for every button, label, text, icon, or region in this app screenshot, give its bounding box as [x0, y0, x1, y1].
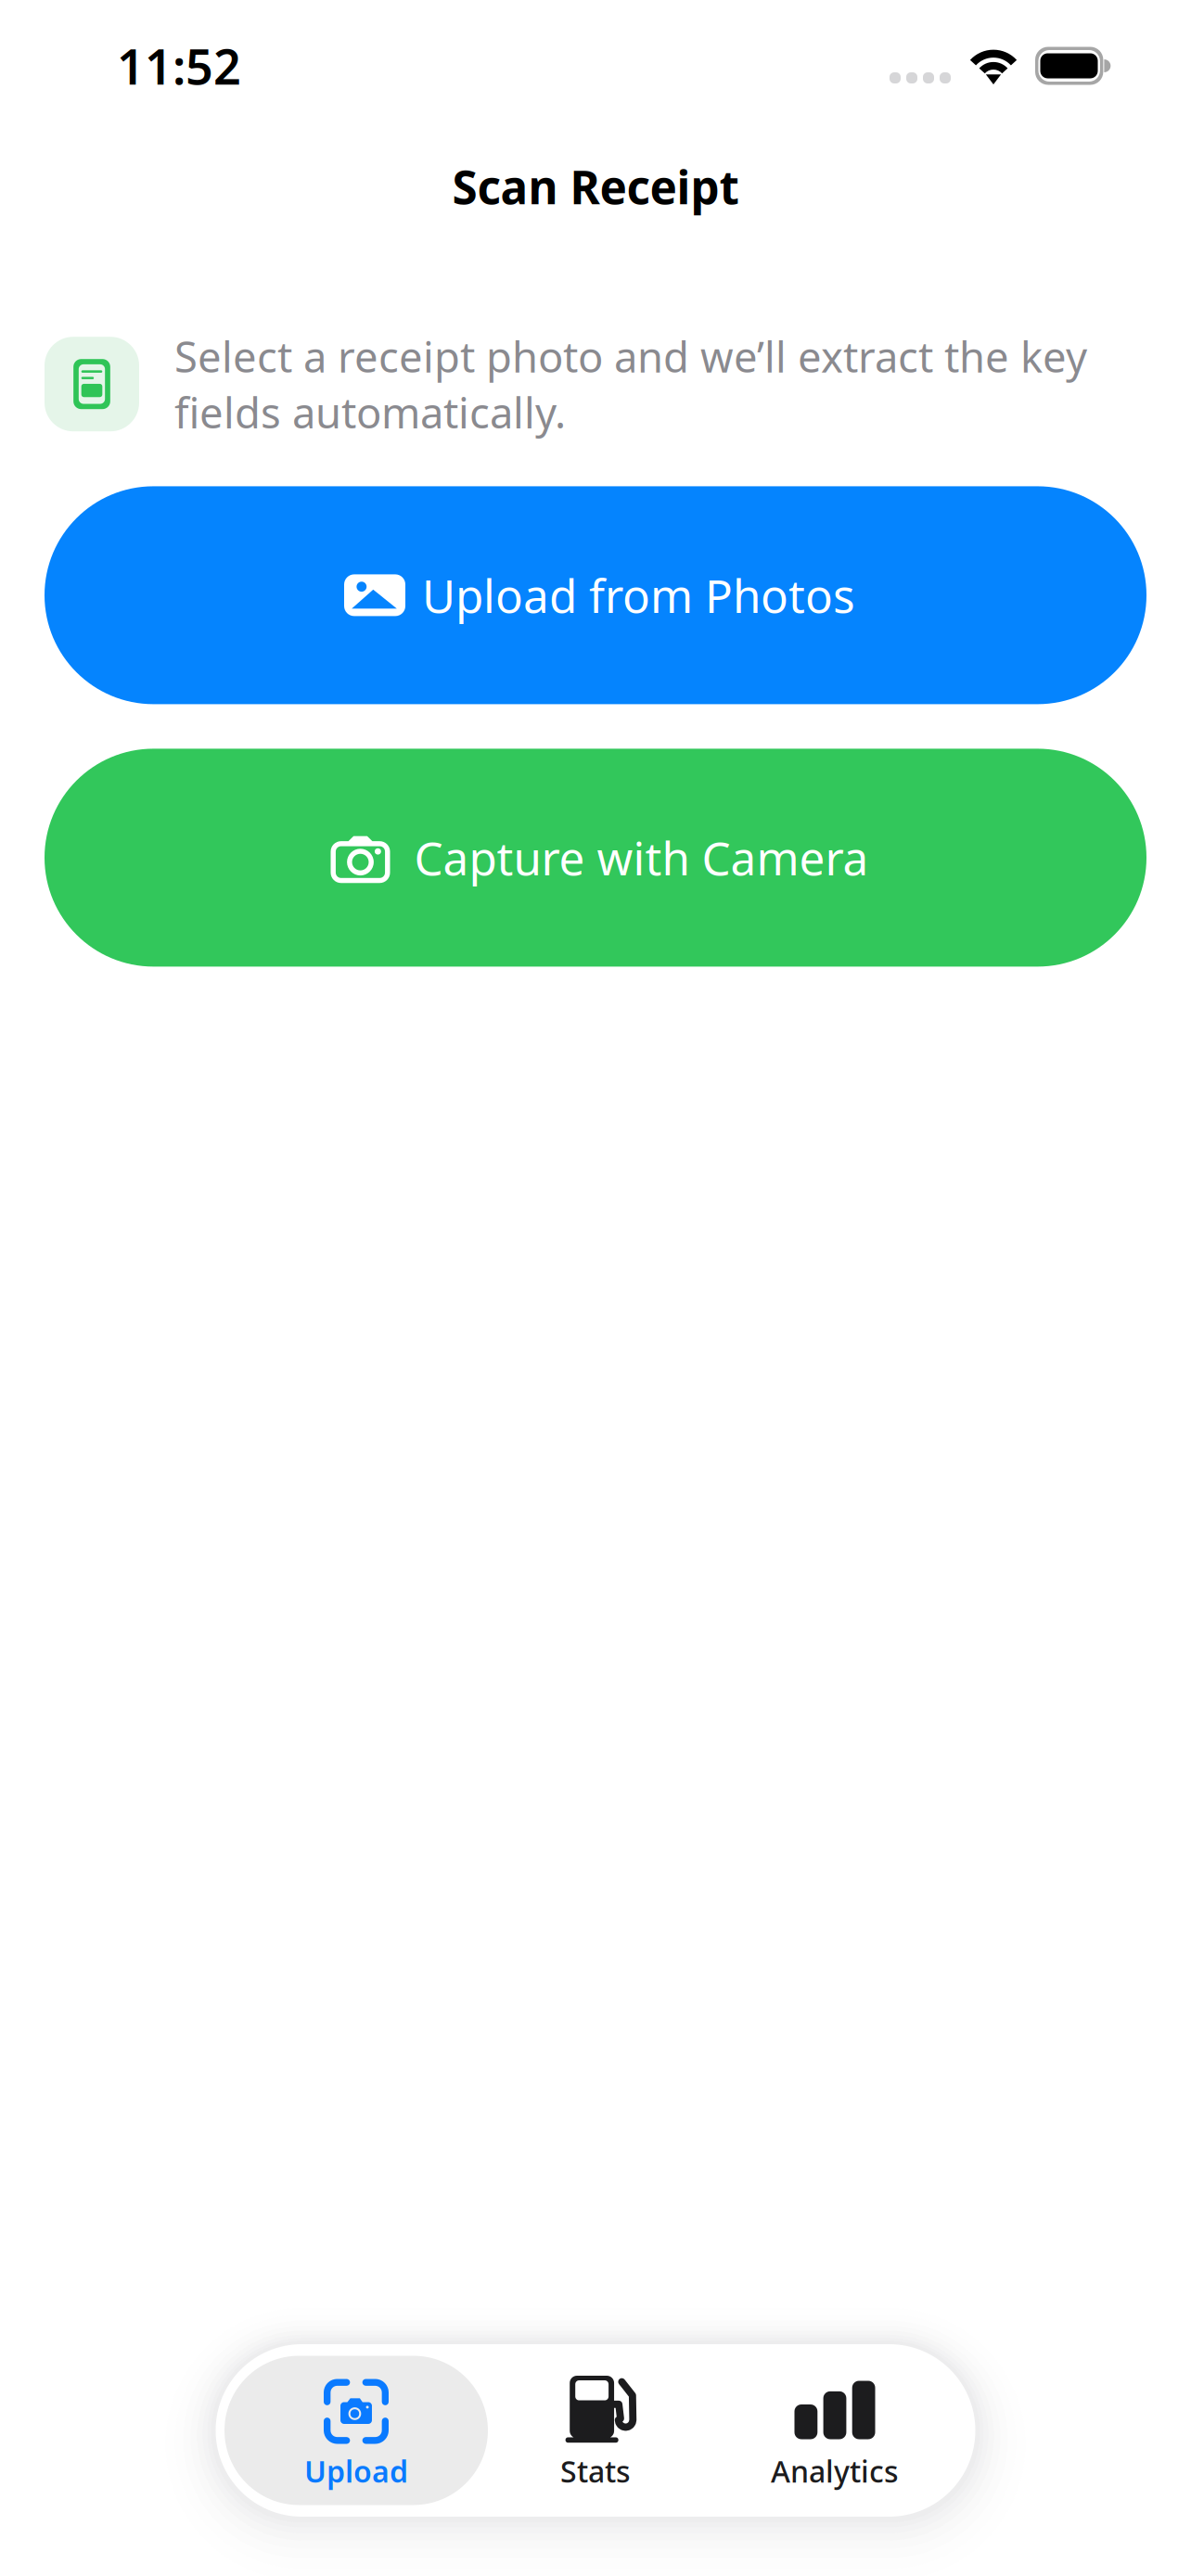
button[interactable]: Stats — [476, 2356, 715, 2505]
staticText: Upload — [304, 2451, 408, 2491]
staticText: 11:52 — [117, 34, 241, 98]
staticText: Analytics — [771, 2451, 899, 2491]
staticText: Scan Receipt — [452, 156, 739, 217]
button[interactable]: Upload — [237, 2356, 476, 2505]
button[interactable]: Upload from Photos — [45, 486, 1146, 704]
staticText: Capture with Camera — [414, 827, 869, 888]
staticText: Stats — [560, 2451, 631, 2491]
button[interactable]: Capture with Camera — [45, 749, 1146, 967]
button[interactable]: Analytics — [715, 2356, 954, 2505]
staticText: Upload from Photos — [422, 565, 855, 626]
staticText: Select a receipt photo and we’ll extract… — [174, 328, 1087, 440]
